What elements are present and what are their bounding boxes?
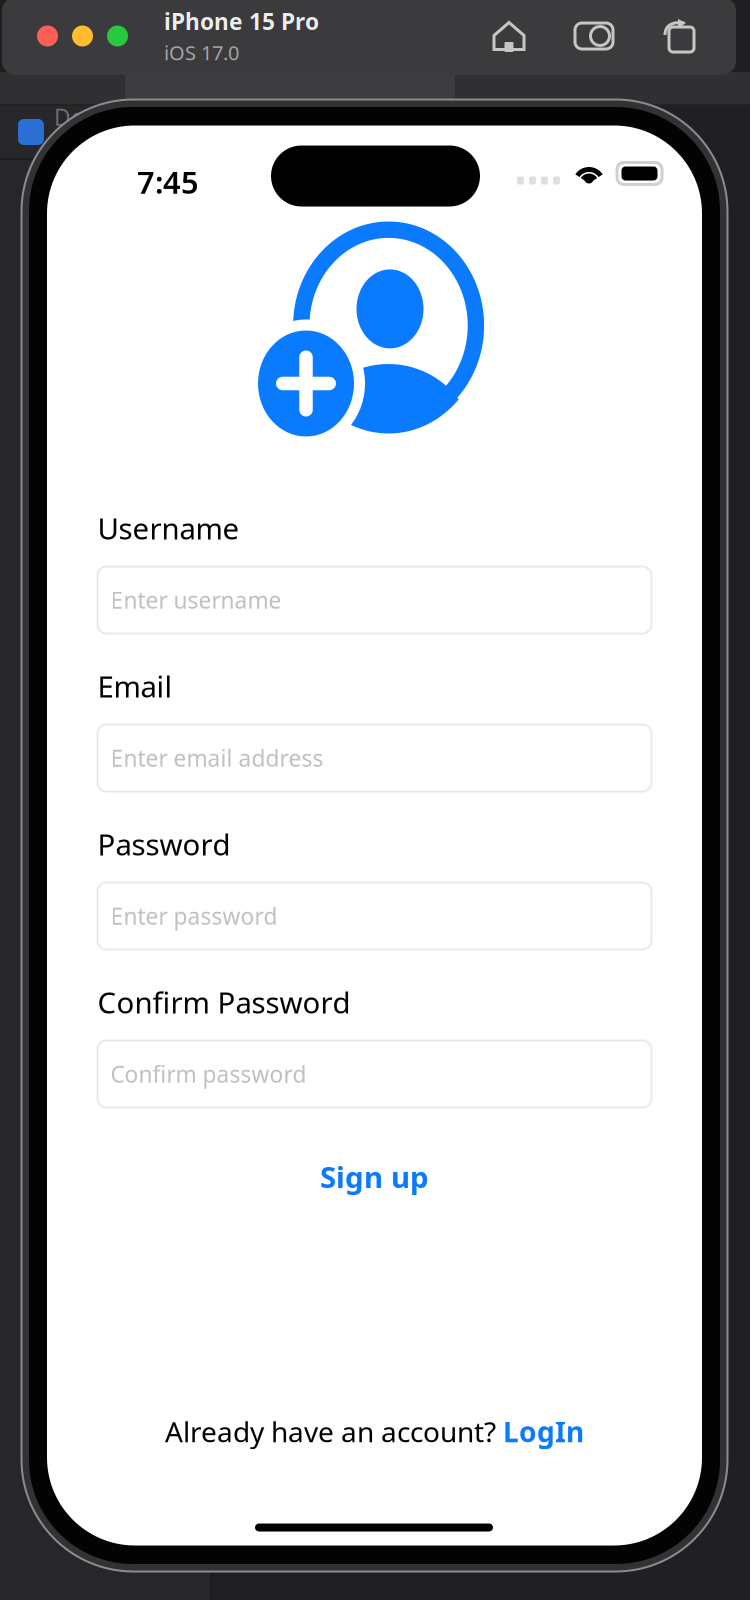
staticText: Already have an account?	[165, 1413, 503, 1450]
staticText: iOS 17.0	[164, 39, 239, 66]
staticText: iPhone 15 Pro	[164, 6, 319, 36]
button[interactable]: Already have an account?	[97, 1409, 651, 1453]
staticText: Confirm Password	[97, 982, 350, 1021]
staticText: Enter password	[110, 901, 277, 931]
button[interactable]: Screenshot	[574, 21, 614, 51]
button[interactable]: Confirm password	[97, 1040, 651, 1107]
button[interactable]: Home	[492, 19, 526, 52]
staticText: Email	[97, 666, 172, 705]
staticText: Enter username	[110, 585, 281, 615]
button[interactable]: Enter email address	[97, 724, 651, 791]
staticText: DonateViewController	[54, 102, 204, 162]
button[interactable]: Enter username	[97, 566, 651, 633]
button[interactable]: Sign up	[97, 1152, 651, 1200]
staticText: Enter email address	[110, 743, 323, 773]
button[interactable]: Share	[662, 19, 696, 53]
staticText: Password	[97, 824, 230, 863]
staticText: Username	[97, 508, 239, 547]
staticText: 7:45	[137, 161, 199, 202]
button[interactable]: Enter password	[97, 882, 651, 949]
staticText: LogIn	[503, 1413, 584, 1450]
staticText: Confirm password	[110, 1059, 306, 1089]
staticText: Sign up	[320, 1157, 429, 1196]
